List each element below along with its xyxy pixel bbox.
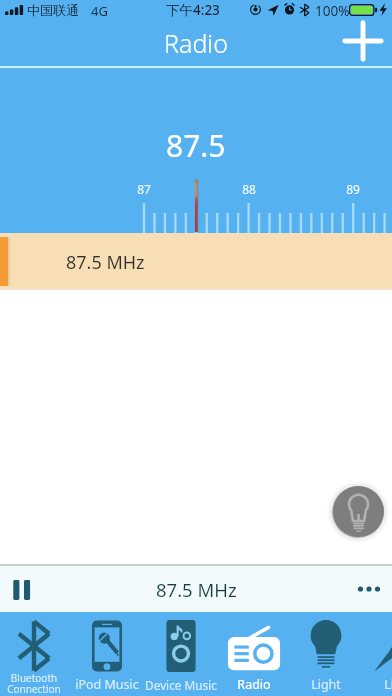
staticText: 中国联通	[27, 2, 79, 18]
staticText: 88	[242, 181, 256, 197]
button[interactable]: Device Music	[131, 612, 231, 696]
staticText: 87	[137, 181, 151, 197]
button[interactable]: Light	[276, 612, 376, 696]
staticText: 下午4:23	[166, 1, 220, 19]
staticText: Light	[311, 676, 341, 693]
staticText: 89	[346, 181, 360, 197]
staticText: Bluetooth Connection	[7, 671, 61, 696]
button[interactable]: Add station	[340, 17, 385, 65]
staticText: Device Music	[145, 677, 217, 693]
staticText: iPod Music	[75, 676, 139, 693]
button[interactable]: Bluetooth Connection	[0, 612, 84, 696]
staticText: 87.5	[166, 125, 226, 166]
staticText: 4G	[91, 2, 108, 20]
button[interactable]: Radio	[204, 612, 304, 696]
staticText: Radio	[164, 26, 228, 60]
staticText: 87.5 MHz	[156, 577, 237, 602]
staticText: Light	[384, 676, 392, 693]
staticText: 87.5 MHz	[66, 250, 145, 275]
button[interactable]: Pause	[3, 574, 39, 606]
staticText: 100%	[315, 2, 350, 20]
button[interactable]: iPod Music	[57, 612, 157, 696]
button[interactable]: More options	[347, 573, 391, 605]
staticText: Radio	[237, 676, 271, 693]
button[interactable]: Light	[349, 612, 392, 696]
button[interactable]: Light	[333, 486, 384, 537]
